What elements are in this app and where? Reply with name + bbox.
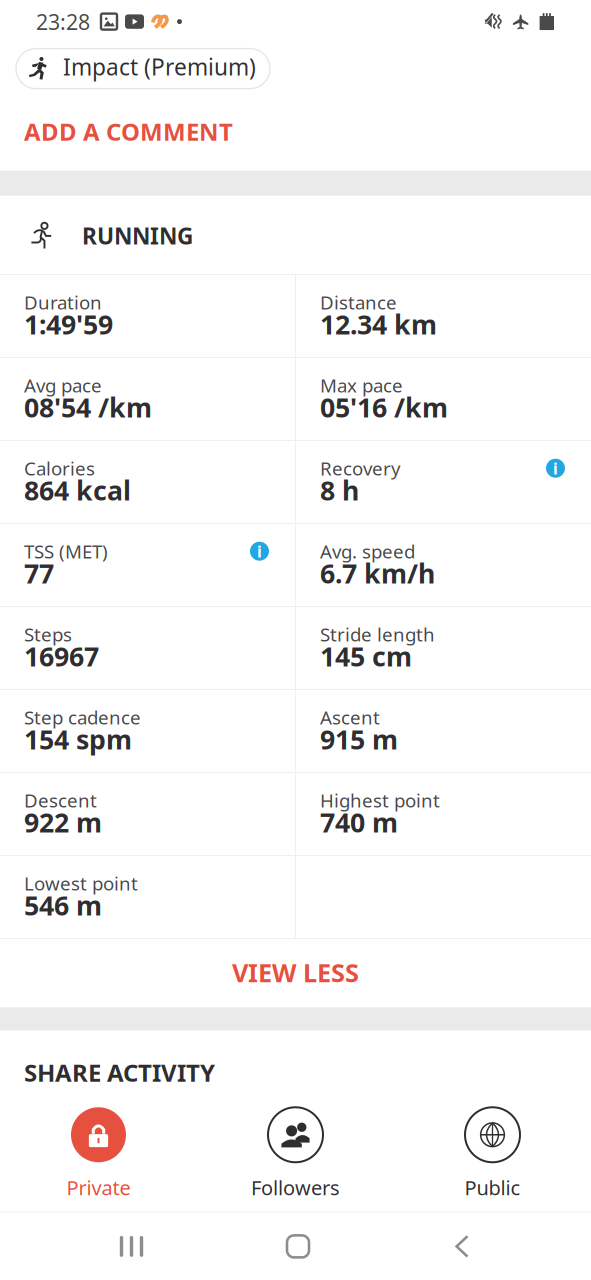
staticText: Avg pace <box>24 373 102 398</box>
staticText: 08'54 /km <box>24 389 152 425</box>
staticText: Distance <box>320 290 397 315</box>
staticText: VIEW LESS <box>232 956 359 989</box>
button[interactable]: Impact (Premium) <box>16 49 270 89</box>
staticText: 6.7 km/h <box>320 555 435 591</box>
staticText: 546 m <box>24 887 102 923</box>
button[interactable]: Back <box>333 1212 591 1280</box>
button[interactable]: Home <box>263 1212 333 1280</box>
staticText: Highest point <box>320 788 440 813</box>
staticText: Descent <box>24 788 97 813</box>
staticText: 915 m <box>320 721 398 757</box>
staticText: Recovery <box>320 456 401 481</box>
button[interactable]: ADD A COMMENT <box>0 89 591 157</box>
staticText: Lowest point <box>24 871 138 896</box>
staticText: 154 spm <box>24 721 132 757</box>
staticText: 145 cm <box>320 638 412 674</box>
staticText: Impact (Premium) <box>63 51 256 82</box>
staticText: 12.34 km <box>320 306 437 342</box>
staticText: 1:49'59 <box>24 306 113 342</box>
staticText: i <box>257 541 262 562</box>
staticText: 740 m <box>320 804 398 840</box>
staticText: Followers <box>251 1174 340 1201</box>
button[interactable]: Private <box>0 1107 197 1207</box>
staticText: Calories <box>24 456 95 481</box>
staticText: Step cadence <box>24 705 141 730</box>
button[interactable]: Recent apps <box>0 1212 263 1280</box>
staticText: i <box>553 458 558 479</box>
staticText: RUNNING <box>82 220 193 251</box>
staticText: Steps <box>24 622 72 647</box>
staticText: Duration <box>24 290 102 315</box>
staticText: TSS (MET) <box>24 539 108 564</box>
staticText: ADD A COMMENT <box>24 116 233 147</box>
staticText: Private <box>66 1174 130 1201</box>
staticText: 16967 <box>24 638 99 674</box>
staticText: 05'16 /km <box>320 389 448 425</box>
staticText: 864 kcal <box>24 472 131 508</box>
staticText: 23:28 <box>36 7 90 36</box>
staticText: 8 h <box>320 472 359 508</box>
button[interactable]: Followers <box>197 1107 394 1207</box>
staticText: 77 <box>24 555 54 591</box>
staticText: Max pace <box>320 373 403 398</box>
staticText: 922 m <box>24 804 102 840</box>
staticText: Ascent <box>320 705 380 730</box>
staticText: Public <box>464 1174 520 1201</box>
button[interactable]: VIEW LESS <box>0 937 591 1007</box>
button[interactable]: Public <box>394 1107 591 1207</box>
staticText: Avg. speed <box>320 539 415 564</box>
staticText: Stride length <box>320 622 435 647</box>
staticText: SHARE ACTIVITY <box>24 1056 215 1088</box>
